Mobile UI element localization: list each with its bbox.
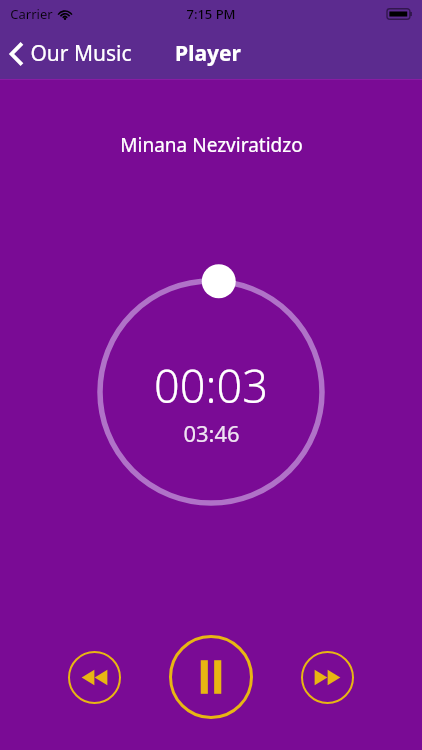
button[interactable]: Our Music	[0, 33, 142, 74]
staticText: Our Music	[30, 39, 132, 68]
staticText: Minana Nezviratidzo	[120, 132, 303, 158]
button[interactable]: Rewind	[68, 651, 121, 704]
button[interactable]: Pause	[169, 635, 253, 719]
staticText: 03:46	[183, 418, 240, 448]
staticText: Carrier	[10, 5, 53, 23]
staticText: 00:03	[154, 355, 268, 416]
button[interactable]: Fast forward	[301, 651, 354, 704]
staticText: 7:15 PM	[186, 5, 236, 23]
staticText: Player	[175, 39, 241, 68]
